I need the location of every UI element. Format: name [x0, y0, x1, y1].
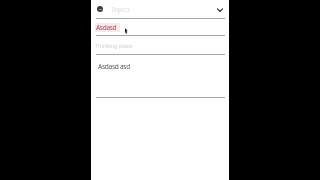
- staticText: Asdasd asd: [98, 62, 130, 71]
- button[interactable]: Asdasd asd: [91, 55, 229, 97]
- staticText: Asdasd: [96, 23, 117, 32]
- button[interactable]: Expand: [214, 2, 228, 16]
- button[interactable]: Asdasd: [91, 19, 229, 35]
- button[interactable]: Topics: [91, 0, 229, 18]
- button[interactable]: Thinking place: [91, 36, 229, 54]
- staticText: Thinking place: [95, 42, 133, 49]
- staticText: Topics: [111, 5, 130, 14]
